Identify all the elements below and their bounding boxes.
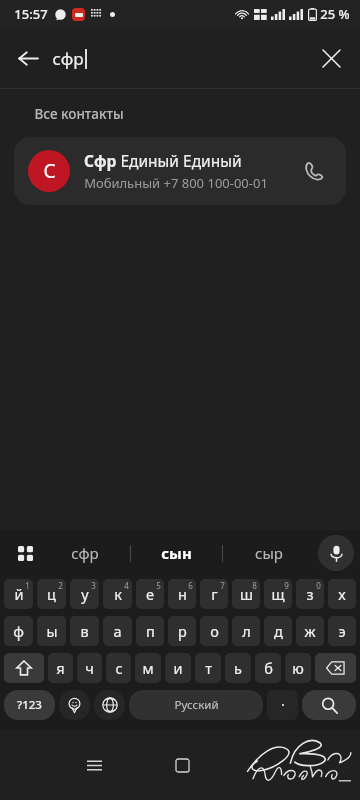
button[interactable]: г — [200, 579, 228, 609]
staticText: о — [210, 621, 219, 641]
button[interactable]: сын — [131, 530, 222, 576]
staticText: ч — [85, 658, 94, 678]
button[interactable]: Русский — [129, 690, 263, 720]
button[interactable]: у — [70, 579, 99, 609]
staticText: я — [56, 658, 65, 678]
staticText: 25 % — [320, 5, 350, 23]
staticText: 6 — [188, 580, 193, 591]
staticText: р — [178, 621, 187, 641]
staticText: х — [338, 584, 346, 604]
staticText: г — [211, 584, 218, 604]
button[interactable]: т — [195, 653, 221, 683]
staticText: Русский — [174, 697, 219, 713]
button[interactable]: л — [232, 616, 260, 646]
button[interactable]: ш — [232, 579, 260, 609]
button[interactable]: к — [103, 579, 132, 609]
button[interactable]: н — [168, 579, 196, 609]
button[interactable]: Voice input — [318, 535, 354, 571]
button[interactable]: ю — [285, 653, 311, 683]
button[interactable]: ц — [37, 579, 66, 609]
staticText: 2 — [58, 580, 63, 591]
staticText: С — [43, 158, 56, 184]
button[interactable]: р — [168, 616, 196, 646]
button[interactable]: б — [255, 653, 281, 683]
staticText: т — [205, 658, 212, 678]
staticText: сфр — [71, 543, 99, 563]
staticText: с — [115, 658, 123, 678]
staticText: 1 — [25, 580, 30, 591]
button[interactable]: С — [14, 137, 346, 205]
staticText: м — [142, 658, 154, 678]
button[interactable]: д — [264, 616, 292, 646]
button[interactable]: сфр — [40, 530, 130, 576]
staticText: ы — [46, 621, 58, 641]
button[interactable]: Emoji — [59, 690, 90, 720]
staticText: 0 — [316, 580, 321, 591]
staticText: 3 — [91, 580, 96, 591]
staticText: ?123 — [17, 697, 42, 713]
staticText: л — [242, 621, 251, 641]
button[interactable]: щ — [264, 579, 292, 609]
staticText: 8 — [252, 580, 257, 591]
staticText: 7 — [220, 580, 225, 591]
staticText: 4 — [124, 580, 129, 591]
button[interactable]: п — [136, 616, 164, 646]
button[interactable]: Search — [302, 690, 356, 720]
button[interactable]: Change language — [94, 690, 125, 720]
button[interactable]: з — [296, 579, 324, 609]
button[interactable]: ж — [296, 616, 324, 646]
button[interactable]: Backspace — [315, 653, 356, 683]
staticText: п — [146, 621, 155, 641]
button[interactable]: сыр — [223, 530, 314, 576]
button[interactable]: в — [70, 616, 99, 646]
staticText: к — [114, 584, 122, 604]
staticText: ш — [240, 584, 253, 604]
staticText: ц — [47, 584, 56, 604]
staticText: и — [173, 658, 183, 678]
staticText: сыр — [255, 543, 283, 563]
staticText: й — [14, 584, 24, 604]
button[interactable]: Recent apps — [72, 743, 116, 787]
staticText: ф — [13, 621, 24, 641]
button[interactable]: й — [4, 579, 33, 609]
button[interactable]: о — [200, 616, 228, 646]
staticText: з — [306, 584, 314, 604]
button[interactable]: ч — [77, 653, 102, 683]
button[interactable]: м — [135, 653, 161, 683]
button[interactable]: х — [328, 579, 356, 609]
staticText: сын — [161, 543, 192, 563]
button[interactable]: ы — [37, 616, 66, 646]
button[interactable]: ф — [4, 616, 33, 646]
button[interactable]: Keyboard options — [7, 535, 43, 571]
button[interactable]: Back — [6, 36, 50, 80]
button[interactable]: Home — [160, 743, 204, 787]
staticText: 15:57 — [14, 5, 48, 23]
staticText: э — [338, 621, 346, 641]
staticText: е — [146, 584, 154, 604]
button[interactable]: э — [328, 616, 356, 646]
button[interactable]: а — [103, 616, 132, 646]
staticText: 5 — [156, 580, 161, 591]
staticText: у — [81, 584, 89, 604]
staticText: б — [264, 658, 273, 678]
button[interactable]: и — [165, 653, 191, 683]
button[interactable]: Call — [294, 152, 332, 190]
button[interactable]: Period — [267, 690, 298, 720]
staticText: д — [274, 621, 283, 641]
staticText: ж — [304, 621, 316, 641]
staticText: ь — [234, 658, 242, 678]
staticText: Сфр Единый Единый — [84, 150, 242, 171]
staticText: Все контакты — [34, 105, 124, 123]
button[interactable]: Clear search — [310, 37, 352, 79]
button[interactable]: Shift — [4, 653, 44, 683]
button[interactable]: е — [136, 579, 164, 609]
staticText: сфр — [52, 47, 84, 70]
button[interactable]: с — [106, 653, 131, 683]
button[interactable]: я — [48, 653, 73, 683]
staticText: щ — [271, 584, 285, 604]
staticText: Мобильный +7 800 100-00-01 — [84, 174, 268, 192]
staticText: 9 — [284, 580, 289, 591]
staticText: а — [113, 621, 122, 641]
button[interactable]: ь — [225, 653, 251, 683]
button[interactable]: ?123 — [4, 690, 55, 720]
